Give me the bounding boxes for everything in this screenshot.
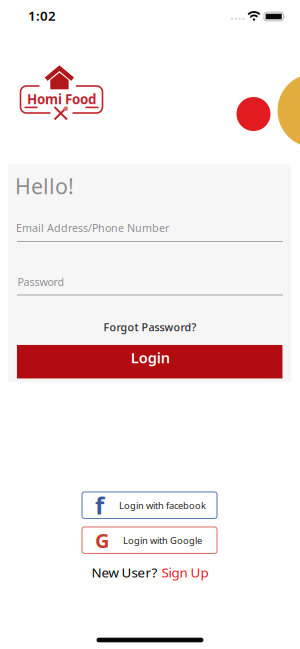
staticText: Login with Google	[123, 534, 202, 547]
button[interactable]: Email Address/Phone Number	[17, 219, 283, 242]
staticText: Password	[17, 275, 64, 289]
staticText: f	[95, 489, 104, 521]
staticText: Homi Food	[27, 90, 96, 108]
button[interactable]: f	[82, 492, 217, 518]
staticText: Email Address/Phone Number	[16, 221, 169, 235]
staticText: New User?	[91, 563, 157, 581]
staticText: Forgot Password?	[103, 320, 196, 334]
button[interactable]: Login	[17, 345, 282, 378]
staticText: Sign Up	[161, 563, 208, 581]
staticText: G	[95, 527, 109, 553]
button[interactable]: Sign Up	[161, 563, 208, 581]
staticText: 1:02	[28, 7, 56, 24]
button[interactable]: G	[82, 527, 217, 553]
staticText: Login	[131, 348, 170, 367]
button[interactable]: Password	[17, 273, 283, 296]
button[interactable]: Forgot Password?	[103, 320, 196, 334]
staticText: Login with facebook	[119, 499, 206, 512]
staticText: Hello!	[15, 172, 74, 200]
